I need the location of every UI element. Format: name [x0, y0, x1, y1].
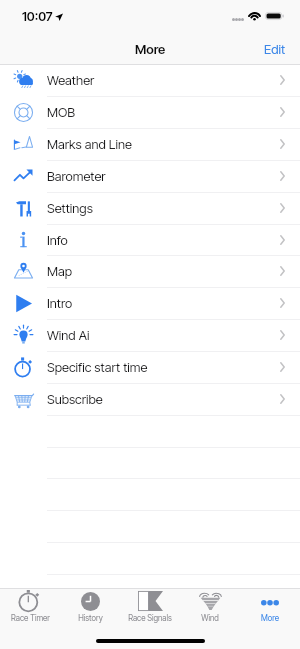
staticText: Wind	[201, 613, 219, 623]
staticText: Wind Ai	[47, 327, 90, 343]
staticText: Specific start time	[47, 359, 148, 375]
staticText: More	[261, 613, 279, 623]
staticText: Settings	[47, 200, 93, 216]
staticText: 10:07	[22, 9, 53, 24]
button[interactable]: MOB	[0, 96, 300, 128]
staticText: Info	[47, 232, 68, 248]
button[interactable]: Edit	[250, 34, 300, 64]
button[interactable]: Settings	[0, 192, 300, 224]
button[interactable]: Race Signals	[120, 589, 180, 623]
staticText: Intro	[47, 295, 73, 311]
button[interactable]: Weather	[0, 64, 300, 96]
staticText: Subscribe	[47, 391, 103, 407]
staticText: Race Timer	[11, 613, 50, 623]
button[interactable]: Marks and Line	[0, 128, 300, 160]
button[interactable]: Intro	[0, 287, 300, 319]
button[interactable]: History	[60, 589, 120, 623]
button[interactable]: Wind Ai	[0, 319, 300, 351]
staticText: More	[135, 41, 166, 57]
button[interactable]: Map	[0, 255, 300, 287]
button[interactable]: Info	[0, 224, 300, 256]
staticText: MOB	[47, 104, 76, 120]
staticText: Race Signals	[128, 613, 172, 623]
staticText: Barometer	[47, 168, 106, 184]
button[interactable]: Barometer	[0, 160, 300, 192]
button[interactable]: Subscribe	[0, 383, 300, 415]
staticText: Weather	[47, 72, 95, 88]
button[interactable]: More	[240, 589, 300, 623]
button[interactable]: Specific start time	[0, 351, 300, 383]
staticText: Map	[47, 263, 73, 279]
staticText: Marks and Line	[47, 136, 132, 152]
staticText: Edit	[264, 41, 286, 57]
button[interactable]: Wind	[180, 589, 240, 623]
button[interactable]: Race Timer	[0, 589, 60, 623]
staticText: History	[78, 613, 103, 623]
